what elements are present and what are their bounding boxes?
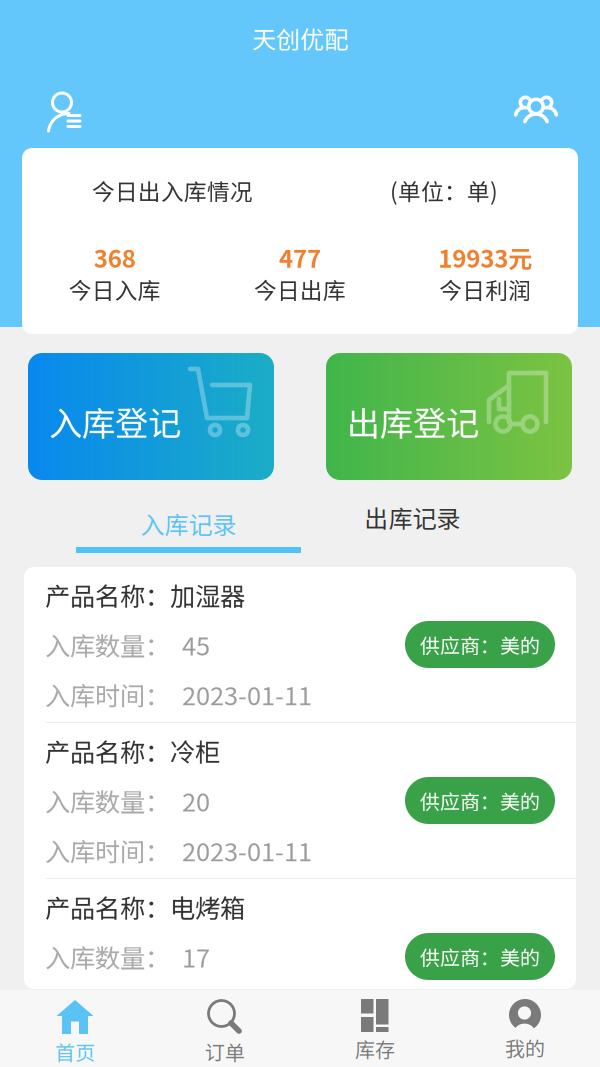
staticText: 20 (170, 782, 210, 819)
staticText: 产品名称：冷柜 (45, 732, 220, 769)
button[interactable]: Contacts (46, 91, 84, 133)
staticText: 17 (170, 938, 210, 975)
button[interactable]: 入库记录 (76, 500, 301, 560)
button[interactable]: 产品名称：冷柜 (24, 723, 576, 878)
staticText: 2023-01-11 (170, 832, 312, 868)
button[interactable]: 库存 (300, 990, 450, 1067)
staticText: 天创优配 (252, 21, 348, 55)
staticText: 入库数量： (45, 626, 170, 663)
staticText: 供应商：美的 (420, 786, 540, 815)
button[interactable]: 入库登记 (28, 353, 274, 480)
staticText: 入库数量： (45, 782, 170, 819)
staticText: 入库登记 (49, 397, 181, 445)
staticText: 出库登记 (347, 397, 479, 445)
button[interactable]: 出库登记 (326, 353, 572, 480)
button[interactable]: 出库记录 (300, 500, 525, 552)
staticText: 订单 (205, 1037, 245, 1066)
button[interactable]: Team (513, 92, 559, 132)
staticText: (单位：单) (390, 174, 498, 207)
staticText: 入库记录 (140, 506, 236, 541)
button[interactable]: 首页 (0, 990, 150, 1067)
staticText: 入库时间： (45, 676, 170, 712)
staticText: 供应商：美的 (420, 630, 540, 659)
staticText: 今日出入库情况 (92, 174, 253, 207)
staticText: 出库记录 (364, 500, 460, 535)
staticText: 入库时间： (45, 832, 170, 868)
button[interactable]: 订单 (150, 990, 300, 1067)
staticText: 我的 (505, 1033, 545, 1062)
staticText: 今日利润 (439, 273, 531, 306)
staticText: 今日出库 (254, 273, 346, 306)
staticText: 库存 (355, 1034, 395, 1063)
button[interactable]: 产品名称：加湿器 (24, 567, 576, 722)
button[interactable]: 我的 (450, 990, 600, 1067)
staticText: 首页 (55, 1037, 95, 1066)
button[interactable]: 产品名称：电烤箱 (24, 879, 576, 1034)
staticText: 19933元 (438, 240, 532, 275)
staticText: 入库数量： (45, 938, 170, 975)
staticText: 今日入库 (69, 273, 161, 306)
staticText: 477 (279, 240, 321, 275)
staticText: 368 (94, 240, 136, 275)
staticText: 2023-01-11 (170, 988, 312, 1024)
staticText: 2023-01-11 (170, 676, 312, 712)
staticText: 45 (170, 626, 210, 663)
staticText: 产品名称：电烤箱 (45, 888, 245, 925)
staticText: 供应商：美的 (420, 942, 540, 971)
staticText: 入库时间： (45, 988, 170, 1024)
staticText: 产品名称：加湿器 (45, 576, 245, 613)
